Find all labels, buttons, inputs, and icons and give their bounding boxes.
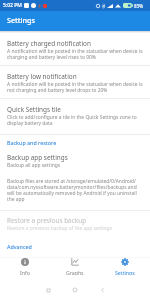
staticText: A notification will be posted in the sta…	[7, 48, 144, 60]
staticText: Restore a previous backup of the app set…	[7, 225, 112, 232]
button[interactable]: Battery charged notification	[0, 31, 150, 65]
staticText: 5:02 PM	[3, 2, 22, 9]
staticText: Backup all app settings	[7, 162, 61, 169]
staticText: Restore a previous backup	[7, 216, 87, 225]
button[interactable]: Restore a previous backup	[0, 211, 150, 237]
staticText: Backup app settings	[7, 153, 68, 162]
button[interactable]: Info	[0, 258, 50, 279]
staticText: Info	[20, 269, 30, 275]
staticText: Backup and restore	[7, 139, 57, 146]
button[interactable]: Backup app settings	[0, 146, 150, 210]
button[interactable]: Back	[95, 283, 109, 297]
staticText: Settings	[115, 269, 135, 275]
staticText: A notification will be posted in the sta…	[7, 81, 144, 93]
staticText: Backup files are stored at /storage/emul…	[7, 178, 144, 202]
staticText: 85%	[134, 3, 144, 9]
staticText: Settings	[7, 15, 35, 25]
staticText: Battery low notification	[7, 72, 77, 81]
staticText: Advanced	[7, 243, 32, 250]
staticText: Graphs	[66, 269, 84, 275]
staticText: Click to add/configure a tile in the Qui…	[7, 114, 144, 126]
button[interactable]: Recents	[41, 283, 55, 297]
staticText: Battery charged notification	[7, 39, 91, 48]
button[interactable]: Settings	[100, 258, 150, 279]
button[interactable]: Home	[68, 283, 82, 297]
staticText: Quick Settings tile	[7, 105, 61, 114]
button[interactable]: Battery low notification	[0, 66, 150, 98]
button[interactable]: Graphs	[50, 258, 100, 279]
button[interactable]: Quick Settings tile	[0, 99, 150, 134]
